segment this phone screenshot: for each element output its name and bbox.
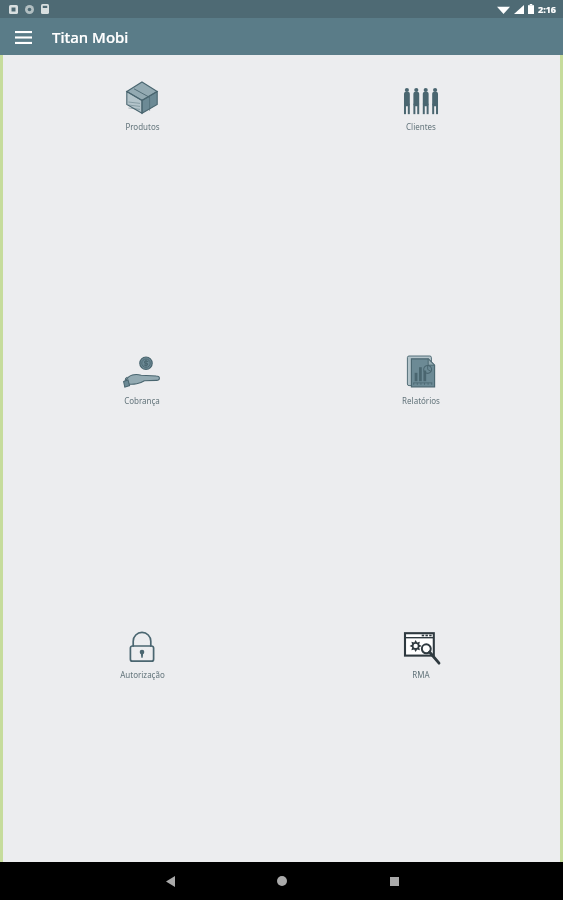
button[interactable]: Cobrança <box>3 349 281 409</box>
button[interactable]: Clientes <box>281 75 560 135</box>
button[interactable]: Back <box>114 862 226 900</box>
staticText: Autorização <box>120 669 165 680</box>
staticText: Relatórios <box>402 395 440 406</box>
button[interactable]: RMA <box>281 623 560 683</box>
staticText: Produtos <box>125 121 160 132</box>
staticText: Cobrança <box>124 395 160 406</box>
button[interactable]: Recent apps <box>338 862 450 900</box>
button[interactable]: Produtos <box>3 75 281 135</box>
staticText: Clientes <box>406 121 436 132</box>
staticText: RMA <box>412 669 430 680</box>
button[interactable]: Relatórios <box>281 349 560 409</box>
button[interactable]: Home <box>226 862 338 900</box>
staticText: 2:16 <box>538 3 556 15</box>
button[interactable]: Open navigation drawer <box>5 19 41 55</box>
staticText: Titan Mobi <box>52 27 129 47</box>
button[interactable]: Autorização <box>3 623 281 683</box>
